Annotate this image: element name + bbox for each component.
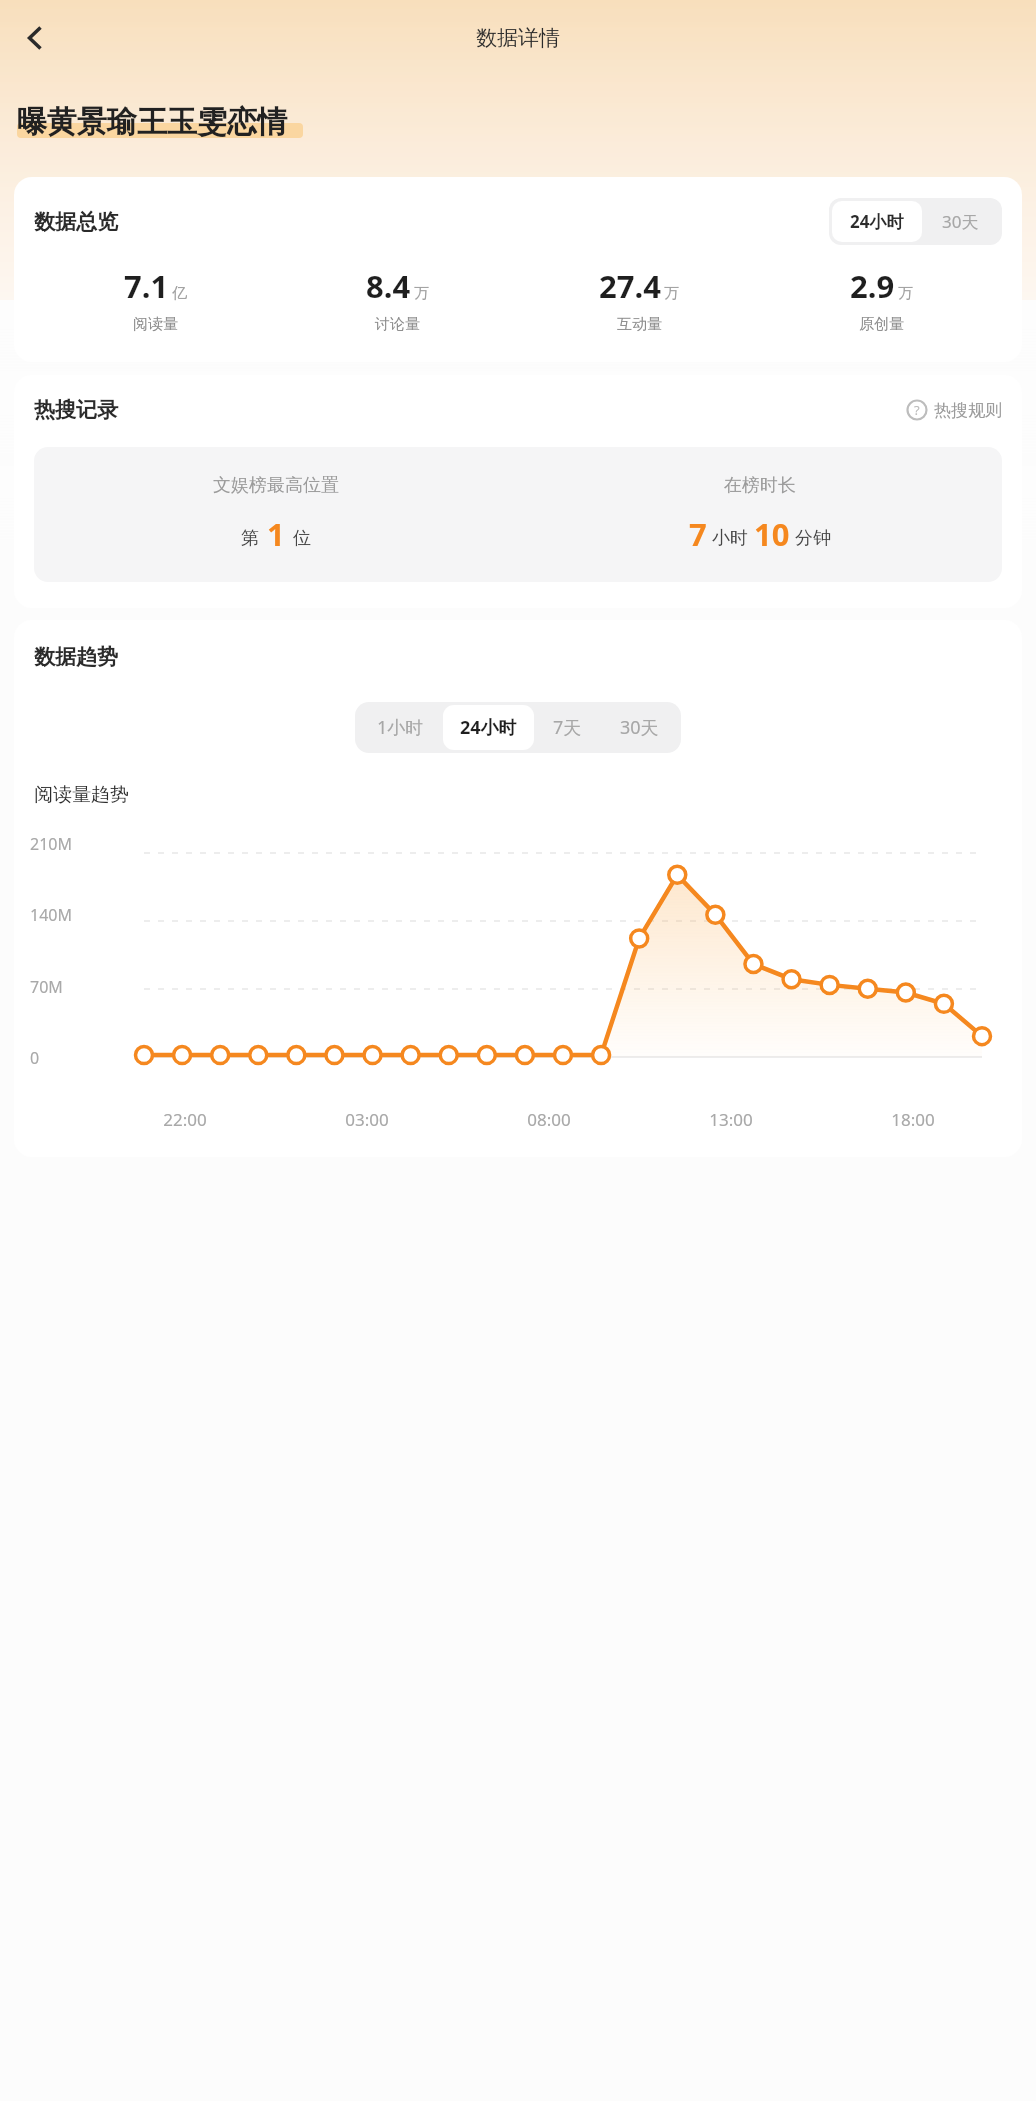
button[interactable]: ? (906, 399, 1002, 421)
staticText: 7 (689, 513, 707, 555)
staticText: 阅读量 (133, 315, 178, 334)
staticText: 30天 (620, 715, 659, 740)
staticText: 在榜时长 (724, 474, 796, 497)
staticText: 万 (414, 284, 429, 303)
staticText: 原创量 (859, 315, 904, 334)
button[interactable]: 1小时 (358, 705, 443, 750)
staticText: 22:00 (163, 1108, 207, 1131)
staticText: ? (914, 401, 920, 419)
staticText: 数据总览 (34, 209, 829, 235)
staticText: 阅读量趋势 (34, 783, 129, 807)
button[interactable]: 7天 (534, 705, 601, 750)
staticText: 7.1 (124, 265, 169, 307)
staticText: 文娱榜最高位置 (213, 474, 339, 497)
button[interactable]: Back (6, 13, 56, 63)
staticText: 8.4 (366, 265, 411, 307)
staticText: 0 (30, 1047, 40, 1069)
staticText: 03:00 (345, 1108, 389, 1131)
staticText: 曝黄景瑜王玉雯恋情 (17, 103, 287, 141)
staticText: 210M (30, 833, 72, 855)
staticText: 热搜规则 (934, 400, 1002, 421)
staticText: 13:00 (709, 1108, 753, 1131)
staticText: 小时 (712, 527, 748, 550)
staticText: 热搜记录 (34, 397, 906, 423)
staticText: 30天 (942, 210, 979, 233)
staticText: 数据趋势 (34, 644, 118, 670)
staticText: 分钟 (795, 527, 831, 550)
button[interactable]: 24小时 (443, 705, 534, 750)
staticText: 24小时 (460, 715, 517, 740)
staticText: 亿 (172, 284, 187, 303)
staticText: 1小时 (377, 715, 424, 740)
staticText: 万 (898, 284, 913, 303)
staticText: 互动量 (617, 315, 662, 334)
staticText: 18:00 (891, 1108, 935, 1131)
staticText: 27.4 (599, 265, 661, 307)
staticText: 位 (293, 527, 311, 550)
staticText: 10 (754, 513, 790, 555)
staticText: 140M (30, 904, 72, 926)
staticText: 万 (664, 284, 679, 303)
button[interactable]: 30天 (922, 201, 999, 242)
staticText: 08:00 (527, 1108, 571, 1131)
staticText: 2.9 (850, 265, 895, 307)
staticText: 7天 (553, 715, 582, 740)
button[interactable]: 30天 (601, 705, 678, 750)
button[interactable]: 24小时 (832, 201, 922, 242)
staticText: 70M (30, 976, 63, 998)
staticText: 1 (267, 513, 285, 555)
staticText: 第 (241, 527, 259, 550)
staticText: 讨论量 (375, 315, 420, 334)
staticText: 24小时 (850, 210, 904, 233)
staticText: 数据详情 (476, 25, 560, 51)
